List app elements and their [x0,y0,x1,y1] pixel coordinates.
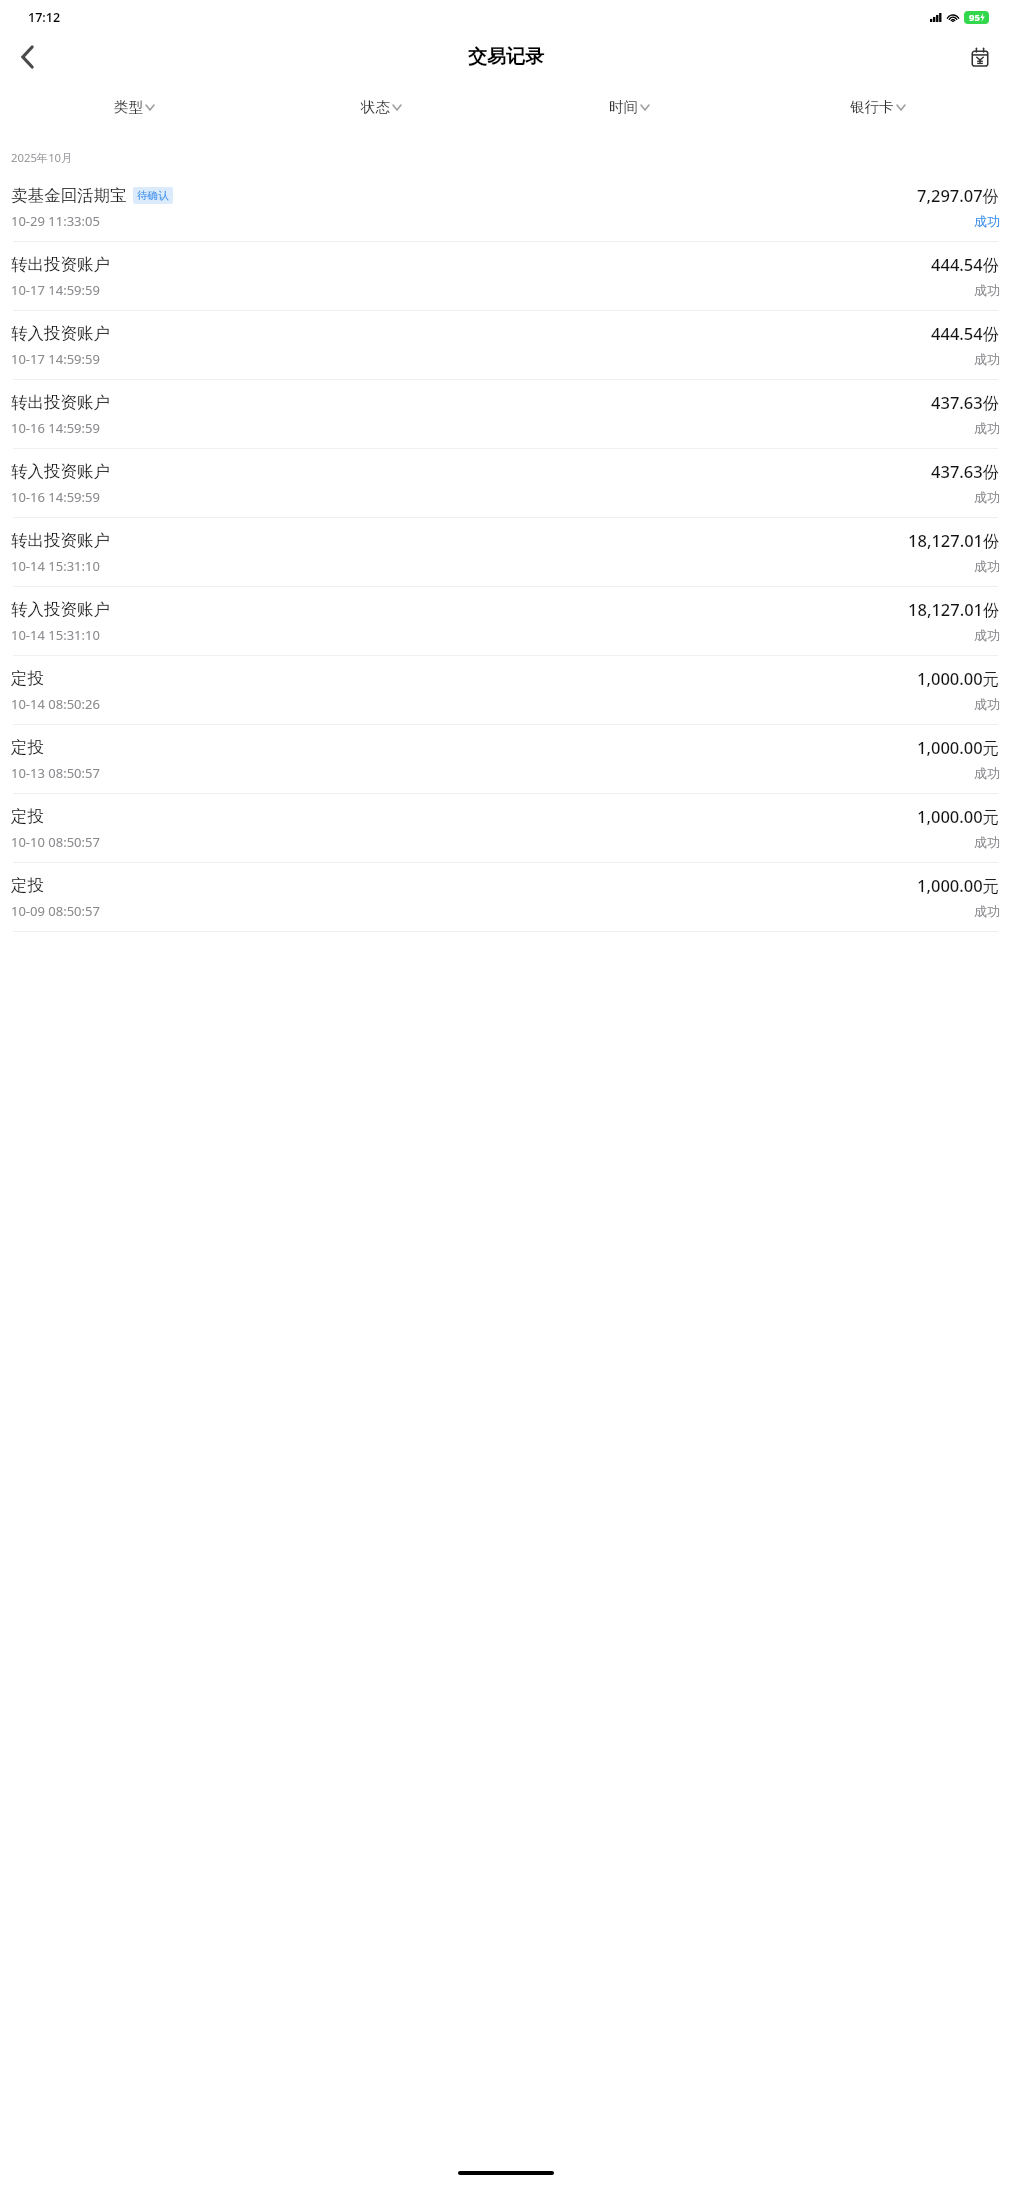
staticText: 444.54份 [931,253,1000,276]
staticText: 成功 [974,903,1000,919]
staticText: 成功 [974,489,1000,505]
button[interactable]: 定投 [0,656,1011,725]
button[interactable]: 转入投资账户 [0,449,1011,518]
staticText: 定投 [11,806,44,827]
staticText: 2025年10月 [11,150,73,165]
staticText: 转入投资账户 [11,599,110,620]
staticText: 18,127.01份 [908,529,1000,552]
staticText: 定投 [11,668,44,689]
staticText: 10-10 08:50:57 [11,833,100,851]
staticText: 定投 [11,737,44,758]
staticText: 1,000.00元 [917,667,1000,690]
button[interactable]: 转出投资账户 [0,518,1011,587]
staticText: 444.54份 [931,322,1000,345]
staticText: 18,127.01份 [908,598,1000,621]
staticText: 10-29 11:33:05 [11,212,100,230]
staticText: 10-14 15:31:10 [11,626,100,644]
button[interactable]: 定投 [0,725,1011,794]
button[interactable]: Calendar [957,34,1003,80]
staticText: 7,297.07份 [917,184,1000,207]
staticText: 437.63份 [931,460,1000,483]
button[interactable]: 转入投资账户 [0,587,1011,656]
button[interactable]: 转入投资账户 [0,311,1011,380]
staticText: 成功 [974,696,1000,712]
staticText: 状态 [361,98,390,116]
button[interactable]: 定投 [0,794,1011,863]
staticText: 成功 [974,213,1000,229]
button[interactable]: 转出投资账户 [0,242,1011,311]
staticText: 交易记录 [468,45,544,69]
staticText: 时间 [609,98,638,116]
staticText: 转出投资账户 [11,254,110,275]
staticText: 转出投资账户 [11,392,110,413]
staticText: 95 [969,11,980,24]
staticText: 转出投资账户 [11,530,110,551]
staticText: 17:12 [28,9,61,26]
staticText: 待确认 [137,189,169,202]
button[interactable]: 卖基金回活期宝 [0,173,1011,242]
button[interactable]: Back [4,34,50,80]
staticText: 成功 [974,558,1000,574]
staticText: 10-17 14:59:59 [11,281,100,299]
staticText: 成功 [974,351,1000,367]
button[interactable]: 状态 [355,92,407,122]
staticText: 10-14 15:31:10 [11,557,100,575]
staticText: 成功 [974,834,1000,850]
staticText: 定投 [11,875,44,896]
staticText: 10-14 08:50:26 [11,695,100,713]
staticText: 10-16 14:59:59 [11,488,100,506]
staticText: 银行卡 [850,98,894,116]
button[interactable]: 银行卡 [844,92,911,122]
staticText: 成功 [974,282,1000,298]
staticText: 成功 [974,765,1000,781]
staticText: 类型 [114,98,143,116]
staticText: 10-13 08:50:57 [11,764,100,782]
staticText: 转入投资账户 [11,323,110,344]
staticText: 10-09 08:50:57 [11,902,100,920]
staticText: 1,000.00元 [917,805,1000,828]
button[interactable]: 时间 [603,92,655,122]
staticText: 转入投资账户 [11,461,110,482]
button[interactable]: 转出投资账户 [0,380,1011,449]
staticText: 成功 [974,420,1000,436]
button[interactable]: 类型 [108,92,160,122]
staticText: 成功 [974,627,1000,643]
staticText: 437.63份 [931,391,1000,414]
staticText: 10-17 14:59:59 [11,350,100,368]
staticText: 1,000.00元 [917,874,1000,897]
button[interactable]: 定投 [0,863,1011,932]
staticText: 卖基金回活期宝 [11,185,127,206]
staticText: 10-16 14:59:59 [11,419,100,437]
staticText: 1,000.00元 [917,736,1000,759]
